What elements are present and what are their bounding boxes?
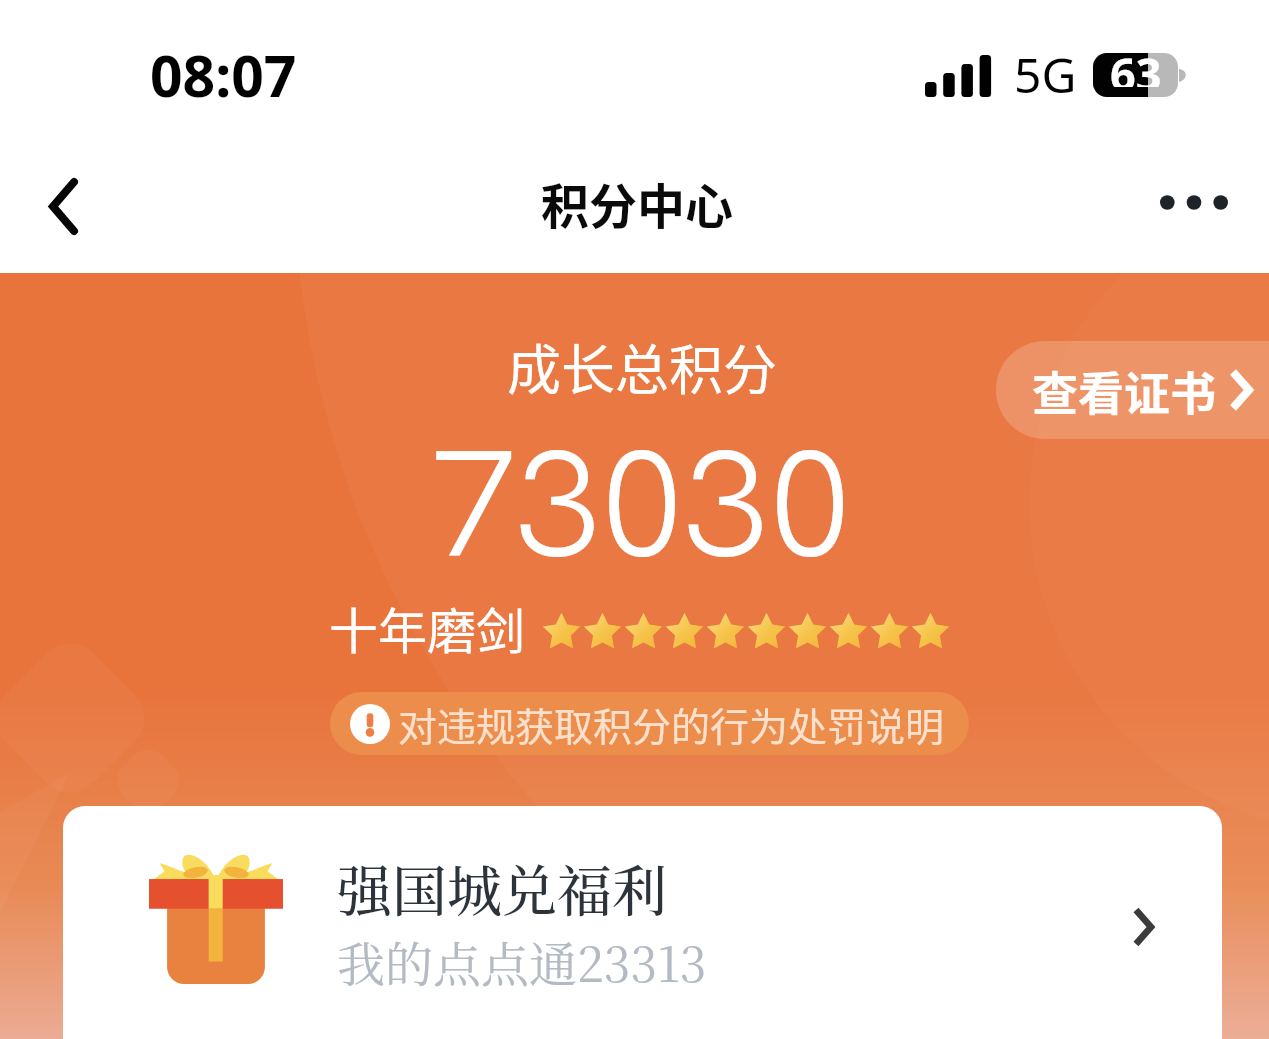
button[interactable]: 查看证书 (996, 341, 1269, 439)
staticText: 强国城兑福利 (337, 848, 668, 927)
staticText: 我的点点通23313 (337, 927, 707, 996)
staticText: 积分中心 (541, 168, 734, 238)
staticText: 08:07 (150, 36, 297, 114)
button[interactable]: 强国城兑福利 (63, 806, 1222, 1039)
staticText: 查看证书 (1032, 357, 1216, 424)
button[interactable]: 对违规获取积分的行为处罚说明 (330, 692, 969, 755)
staticText: 成长总积分 (507, 327, 777, 405)
staticText: 对违规获取积分的行为处罚说明 (398, 696, 945, 752)
staticText: 63 (1110, 43, 1162, 87)
staticText: 十年磨剑 (329, 592, 526, 663)
button[interactable]: More options (1141, 146, 1247, 258)
button[interactable]: Back (10, 150, 116, 262)
staticText: 73030 (432, 406, 853, 601)
staticText: 5G (1014, 42, 1077, 107)
